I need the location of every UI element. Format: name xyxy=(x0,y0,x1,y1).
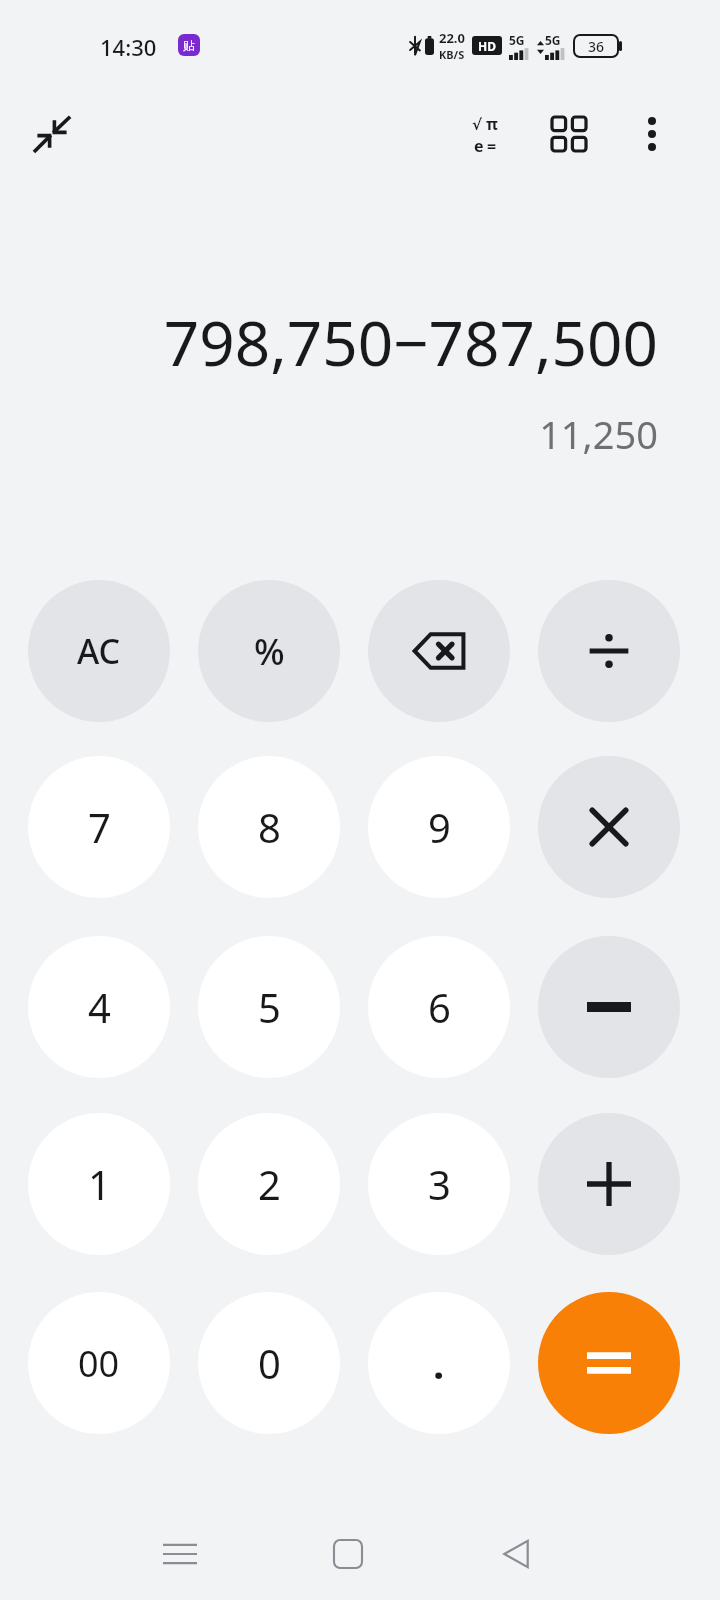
button[interactable]: . xyxy=(368,1292,510,1434)
staticText: 7 xyxy=(88,800,111,854)
button[interactable]: 00 xyxy=(28,1292,170,1434)
button[interactable]: Backspace xyxy=(368,580,510,722)
button[interactable]: 8 xyxy=(198,756,340,898)
button[interactable]: Home xyxy=(308,1514,388,1594)
staticText: AC xyxy=(77,628,121,674)
staticText: . xyxy=(433,1336,445,1390)
button[interactable]: 5 xyxy=(198,936,340,1078)
button[interactable]: 7 xyxy=(28,756,170,898)
button[interactable]: Divide xyxy=(538,580,680,722)
button[interactable]: Minus xyxy=(538,936,680,1078)
staticText: = xyxy=(487,135,497,157)
button[interactable]: Scientific mode xyxy=(452,102,518,168)
button[interactable]: Back xyxy=(476,1514,556,1594)
staticText: 3 xyxy=(428,1157,451,1211)
staticText: 11,250 xyxy=(539,408,658,460)
button[interactable]: 3 xyxy=(368,1113,510,1255)
staticText: % xyxy=(254,627,285,676)
staticText: 1 xyxy=(88,1157,111,1211)
staticText: 4 xyxy=(88,980,111,1034)
button[interactable]: AC xyxy=(28,580,170,722)
button[interactable]: Multiply xyxy=(538,756,680,898)
staticText: 36 xyxy=(588,37,605,56)
button[interactable]: 6 xyxy=(368,936,510,1078)
button[interactable]: Keypad layout xyxy=(537,102,601,166)
button[interactable]: More options xyxy=(620,102,684,166)
button[interactable]: Collapse xyxy=(20,102,84,166)
staticText: 8 xyxy=(258,800,281,854)
button[interactable]: 0 xyxy=(198,1292,340,1434)
button[interactable]: Plus xyxy=(538,1113,680,1255)
staticText: 9 xyxy=(428,800,451,854)
button[interactable]: 4 xyxy=(28,936,170,1078)
staticText: HD xyxy=(478,38,496,54)
staticText: 6 xyxy=(428,980,451,1034)
staticText: π xyxy=(486,113,498,135)
button[interactable]: 2 xyxy=(198,1113,340,1255)
staticText: 5G xyxy=(509,32,525,48)
staticText: 贴 xyxy=(183,38,195,53)
staticText: 5 xyxy=(258,980,281,1034)
button[interactable]: 9 xyxy=(368,756,510,898)
staticText: 00 xyxy=(78,1339,120,1388)
staticText: 2 xyxy=(258,1157,281,1211)
staticText: 798,750−787,500 xyxy=(163,300,658,384)
staticText: KB/S xyxy=(439,47,465,62)
staticText: 5G xyxy=(545,32,561,48)
staticText: √ xyxy=(472,116,483,133)
button[interactable]: Recent apps xyxy=(140,1514,220,1594)
staticText: 22.0 xyxy=(439,29,465,47)
staticText: e xyxy=(474,135,484,157)
button[interactable]: % xyxy=(198,580,340,722)
staticText: 14:30 xyxy=(100,32,157,62)
button[interactable]: 1 xyxy=(28,1113,170,1255)
button[interactable]: Equals xyxy=(538,1292,680,1434)
staticText: 0 xyxy=(258,1336,281,1390)
